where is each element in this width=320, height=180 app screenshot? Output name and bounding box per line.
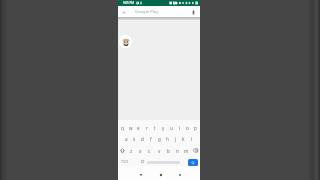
- staticText: 9:05 PM: [123, 1, 134, 5]
- button[interactable]: [147, 157, 180, 166]
- button[interactable]: ?123: [120, 157, 129, 166]
- button[interactable]: Back: [118, 6, 130, 18]
- staticText: g: [158, 136, 161, 142]
- button[interactable]: m: [183, 146, 190, 155]
- button[interactable]: Shift: [119, 147, 126, 154]
- staticText: x: [139, 148, 142, 154]
- staticText: o: [186, 125, 189, 131]
- staticText: i: [179, 125, 181, 131]
- button[interactable]: q: [119, 123, 126, 132]
- button[interactable]: x: [137, 146, 144, 155]
- staticText: d: [141, 136, 144, 142]
- staticText: h: [166, 136, 169, 142]
- staticText: b: [167, 148, 170, 154]
- button[interactable]: Backspace: [192, 147, 199, 154]
- button[interactable]: k: [180, 134, 187, 143]
- button[interactable]: n: [174, 146, 181, 155]
- staticText: m: [184, 148, 189, 154]
- button[interactable]: h: [164, 134, 171, 143]
- staticText: a: [125, 136, 128, 142]
- button[interactable]: d: [139, 134, 146, 143]
- staticText: w: [129, 125, 133, 131]
- button[interactable]: s: [131, 134, 138, 143]
- button[interactable]: u: [168, 123, 175, 132]
- staticText: f: [150, 136, 152, 142]
- staticText: r: [146, 125, 148, 131]
- button[interactable]: Back: [136, 170, 145, 179]
- button[interactable]: Recents: [175, 170, 184, 179]
- button[interactable]: Search: [188, 159, 198, 166]
- button[interactable]: y: [160, 123, 167, 132]
- staticText: j: [175, 136, 177, 142]
- staticText: e: [137, 125, 140, 131]
- button[interactable]: t: [151, 123, 158, 132]
- button[interactable]: r: [143, 123, 150, 132]
- staticText: z: [130, 148, 133, 154]
- staticText: p: [194, 125, 197, 131]
- button[interactable]: Voice search: [187, 6, 200, 18]
- staticText: y: [162, 125, 165, 131]
- button[interactable]: o: [184, 123, 191, 132]
- button[interactable]: g: [156, 134, 163, 143]
- button[interactable]: Home: [156, 170, 165, 179]
- button[interactable]: j: [172, 134, 179, 143]
- button[interactable]: a: [123, 134, 130, 143]
- button[interactable]: Account: [119, 35, 132, 48]
- staticText: v: [158, 148, 161, 154]
- staticText: l: [191, 136, 193, 142]
- staticText: s: [133, 136, 136, 142]
- button[interactable]: w: [127, 123, 134, 132]
- button[interactable]: p: [192, 123, 199, 132]
- staticText: c: [148, 148, 151, 154]
- staticText: t: [154, 125, 156, 131]
- button[interactable]: c: [146, 146, 153, 155]
- button[interactable]: f: [147, 134, 154, 143]
- button[interactable]: l: [188, 134, 195, 143]
- staticText: u: [170, 125, 173, 131]
- staticText: k: [182, 136, 185, 142]
- button[interactable]: z: [128, 146, 135, 155]
- button[interactable]: e: [135, 123, 142, 132]
- button[interactable]: v: [156, 146, 163, 155]
- button[interactable]: Language: [139, 157, 146, 166]
- staticText: ?123: [121, 160, 128, 164]
- staticText: q: [121, 125, 124, 131]
- staticText: Google Play: [135, 9, 159, 15]
- staticText: n: [176, 148, 179, 154]
- button[interactable]: i: [176, 123, 183, 132]
- button[interactable]: b: [165, 146, 172, 155]
